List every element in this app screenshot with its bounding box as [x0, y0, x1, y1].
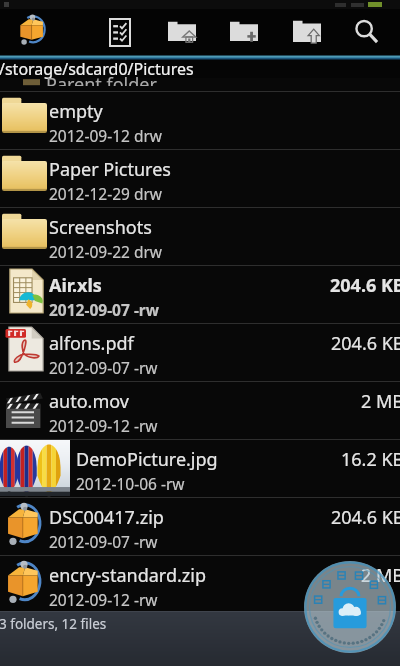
button[interactable]: New folder: [216, 9, 272, 58]
staticText: 16.2 KB: [341, 447, 400, 472]
staticText: Screenshots: [49, 215, 152, 240]
button[interactable]: empty: [0, 92, 400, 150]
staticText: Air.xls: [49, 273, 102, 298]
staticText: 2012-12-29 drw: [49, 183, 163, 204]
staticText: 2 MB: [361, 389, 400, 414]
button[interactable]: Search: [339, 9, 395, 58]
button[interactable]: Parent folder: [0, 78, 400, 92]
button[interactable]: alfons.pdf: [0, 324, 400, 382]
staticText: 3 folders, 12 files: [0, 615, 107, 633]
button[interactable]: Upload: [279, 9, 335, 58]
staticText: auto.mov: [49, 389, 129, 414]
button[interactable]: auto.mov: [0, 382, 400, 440]
button[interactable]: Paper Pictures: [0, 150, 400, 208]
staticText: 2012-09-22 drw: [49, 241, 163, 262]
staticText: Parent folder: [46, 72, 157, 86]
button[interactable]: Select items: [92, 9, 148, 58]
button[interactable]: Air.xls: [0, 266, 400, 324]
staticText: Paper Pictures: [49, 157, 171, 182]
staticText: 204.6 KB: [331, 331, 400, 356]
staticText: 2012-10-06 -rw: [76, 473, 185, 494]
staticText: empty: [49, 99, 103, 124]
staticText: DemoPicture.jpg: [76, 447, 218, 472]
staticText: 2012-09-07 -rw: [49, 531, 158, 552]
staticText: 204.6 KB: [331, 505, 400, 530]
button[interactable]: DemoPicture.jpg: [0, 440, 400, 498]
staticText: DSC00417.zip: [49, 505, 164, 530]
staticText: alfons.pdf: [49, 331, 134, 356]
button[interactable]: encry-standard.zip: [0, 556, 400, 614]
staticText: 204.6 KB: [330, 273, 400, 298]
button[interactable]: Home folder: [154, 9, 210, 58]
button[interactable]: App: [7, 9, 57, 58]
staticText: 2012-09-12 drw: [49, 125, 163, 146]
button[interactable]: Screenshots: [0, 208, 400, 266]
staticText: 2012-09-12 -rw: [49, 589, 158, 610]
button[interactable]: DSC00417.zip: [0, 498, 400, 556]
staticText: 2 MB: [361, 563, 400, 588]
staticText: 2012-09-07 -rw: [49, 357, 158, 378]
staticText: 2012-09-07 -rw: [49, 299, 160, 320]
staticText: 2012-09-12 -rw: [49, 415, 158, 436]
staticText: encry-standard.zip: [49, 563, 206, 588]
staticText: /storage/sdcard0/Pictures: [0, 58, 194, 80]
